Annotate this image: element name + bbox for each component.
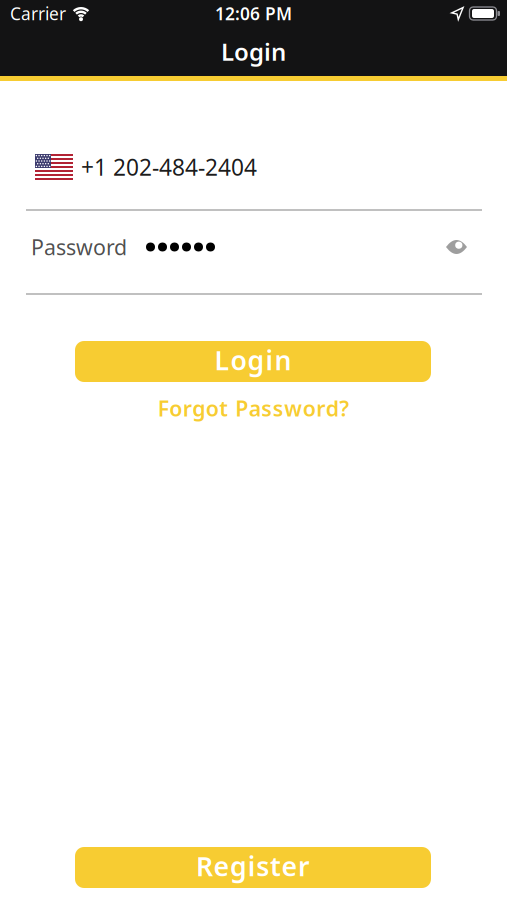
staticText: Login — [221, 36, 286, 67]
staticText: Password — [31, 233, 127, 261]
staticText: +1 202-484-2404 — [81, 152, 257, 182]
staticText: Carrier — [10, 2, 66, 25]
button[interactable]: +1 202-484-2404 — [0, 154, 507, 180]
staticText: Register — [196, 848, 310, 884]
button[interactable]: Login — [75, 341, 431, 382]
button[interactable]: Show password — [446, 238, 467, 255]
button[interactable]: Forgot Password? — [158, 394, 349, 422]
staticText: Forgot Password? — [158, 394, 349, 422]
staticText: Login — [214, 342, 291, 378]
staticText: 12:06 PM — [215, 2, 292, 25]
button[interactable]: Password — [31, 233, 215, 261]
button[interactable]: Register — [75, 847, 431, 888]
